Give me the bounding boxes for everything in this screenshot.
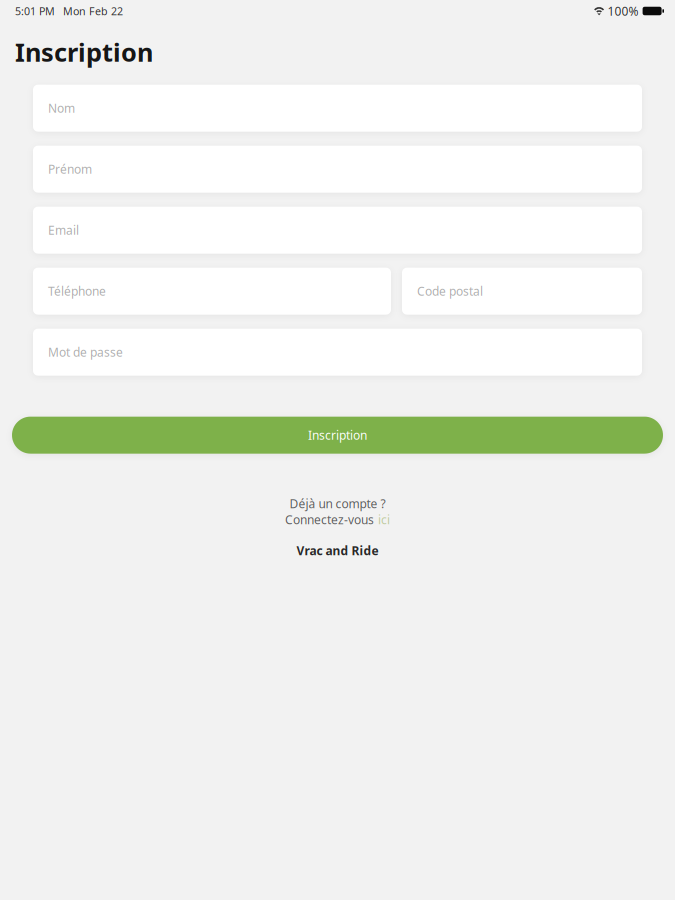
staticText: Téléphone [48, 283, 106, 299]
button[interactable]: Connectez-vous [285, 512, 390, 527]
staticText: Vrac and Ride [296, 542, 378, 558]
staticText: Inscription [308, 427, 367, 443]
button[interactable]: Mot de passe [33, 329, 642, 376]
button[interactable]: Inscription [12, 417, 663, 454]
staticText: 100% [608, 3, 639, 19]
button[interactable]: Nom [33, 85, 642, 132]
button[interactable]: Email [33, 207, 642, 254]
staticText: Email [48, 222, 79, 238]
staticText: Prénom [48, 161, 92, 177]
staticText: Mot de passe [48, 344, 123, 360]
staticText: Connectez-vous [285, 512, 374, 527]
staticText: Déjà un compte ? [289, 496, 385, 511]
staticText: Nom [48, 100, 75, 116]
staticText: Code postal [417, 283, 483, 299]
staticText: Mon Feb 22 [63, 4, 123, 18]
staticText: 5:01 PM [15, 4, 55, 18]
button[interactable]: Prénom [33, 146, 642, 193]
button[interactable]: Code postal [402, 268, 642, 315]
button[interactable]: Téléphone [33, 268, 391, 315]
staticText: Inscription [15, 35, 153, 69]
staticText: ici [378, 512, 390, 527]
